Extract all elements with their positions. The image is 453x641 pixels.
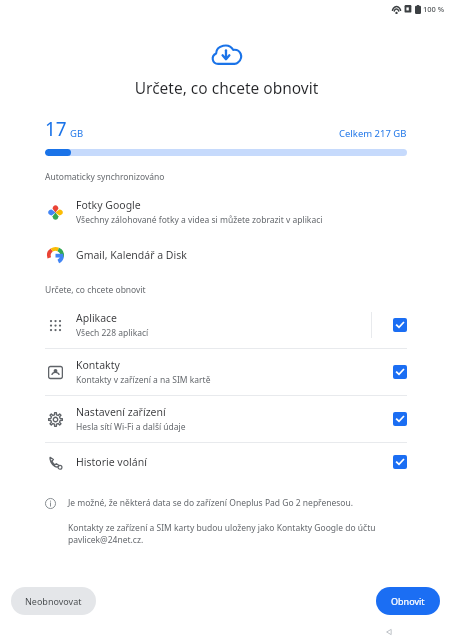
staticText: Hesla sítí Wi-Fi a další údaje	[76, 421, 186, 433]
staticText: Fotky Google	[76, 198, 141, 212]
button[interactable]: Back	[383, 626, 395, 638]
staticText: Všech 228 aplikací	[76, 327, 149, 339]
button[interactable]: Kontakty	[0, 349, 453, 395]
staticText: Kontakty	[76, 358, 120, 372]
button[interactable]: Historie volání	[0, 443, 453, 481]
staticText: Automaticky synchronizováno	[45, 171, 165, 183]
button[interactable]: Fotky Google	[0, 193, 453, 231]
staticText: Historie volání	[76, 455, 147, 469]
button[interactable]: Obnovit	[376, 587, 440, 615]
staticText: 17	[45, 116, 67, 142]
button[interactable]: Aplikace	[0, 302, 453, 348]
button[interactable]: Gmail, Kalendář a Disk	[0, 240, 453, 270]
staticText: Určete, co chcete obnovit	[0, 77, 453, 98]
staticText: Je možné, že některá data se do zařízení…	[68, 497, 354, 509]
staticText: Obnovit	[391, 595, 425, 607]
staticText: Kontakty v zařízení a na SIM kartě	[76, 374, 211, 386]
staticText: GB	[70, 127, 84, 140]
staticText: Aplikace	[76, 311, 118, 325]
button[interactable]: Checked Aplikace	[393, 318, 407, 332]
button[interactable]: Neobnovovat	[11, 587, 96, 615]
button[interactable]: Checked Nastavení zařízení	[393, 412, 407, 426]
staticText: Neobnovovat	[25, 595, 82, 607]
staticText: Kontakty ze zařízení a SIM karty budou u…	[68, 522, 433, 546]
button[interactable]: Checked Kontakty	[393, 365, 407, 379]
staticText: Nastavení zařízení	[76, 405, 166, 419]
staticText: Celkem 217 GB	[339, 127, 407, 140]
staticText: Gmail, Kalendář a Disk	[76, 248, 187, 262]
button[interactable]: Checked Historie volání	[393, 455, 407, 469]
button[interactable]: Nastavení zařízení	[0, 396, 453, 442]
staticText: 100 %	[423, 4, 445, 14]
staticText: Všechny zálohované fotky a videa si může…	[76, 214, 323, 226]
staticText: Určete, co chcete obnovit	[45, 284, 146, 296]
